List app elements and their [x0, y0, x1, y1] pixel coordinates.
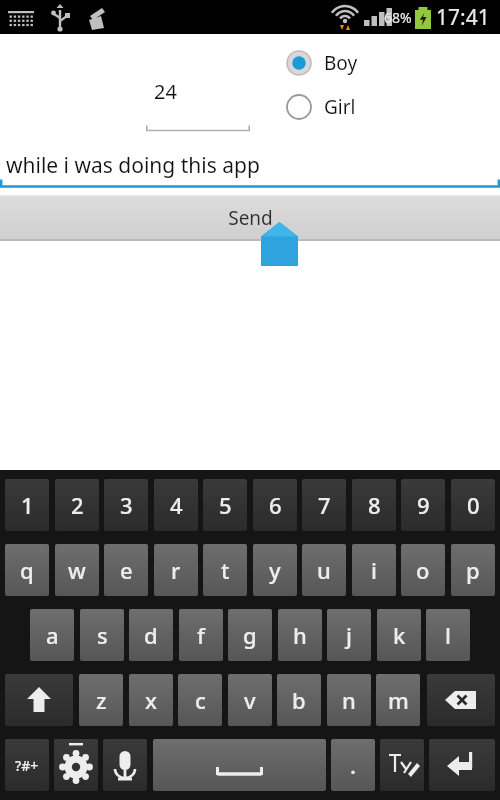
button[interactable]: 7: [302, 479, 346, 531]
button[interactable]: b: [277, 674, 321, 726]
staticText: y: [269, 555, 281, 585]
staticText: p: [466, 555, 480, 585]
button[interactable]: v: [228, 674, 272, 726]
button[interactable]: q: [5, 544, 49, 596]
staticText: g: [243, 620, 257, 650]
button[interactable]: n: [327, 674, 371, 726]
staticText: k: [393, 620, 406, 650]
button[interactable]: 6: [253, 479, 297, 531]
button[interactable]: d: [129, 609, 173, 661]
button[interactable]: l: [426, 609, 470, 661]
staticText: 17:41: [436, 3, 490, 32]
staticText: b: [292, 685, 306, 715]
button[interactable]: j: [327, 609, 371, 661]
staticText: o: [416, 555, 430, 585]
staticText: Send: [228, 205, 273, 231]
button[interactable]: k: [377, 609, 421, 661]
staticText: v: [244, 685, 256, 715]
staticText: s: [97, 620, 108, 650]
button[interactable]: Voice input: [103, 739, 147, 791]
staticText: j: [346, 620, 352, 650]
button[interactable]: o: [401, 544, 445, 596]
button[interactable]: y: [253, 544, 297, 596]
staticText: 5: [219, 490, 232, 520]
staticText: 8: [368, 490, 381, 520]
button[interactable]: 2: [55, 479, 99, 531]
button[interactable]: Girl: [286, 90, 396, 124]
button[interactable]: 1: [5, 479, 49, 531]
button[interactable]: 8: [352, 479, 396, 531]
button[interactable]: Boy: [286, 46, 396, 80]
staticText: l: [445, 620, 451, 650]
staticText: Boy: [324, 50, 358, 76]
button[interactable]: c: [178, 674, 222, 726]
staticText: Girl: [324, 94, 356, 120]
staticText: 1: [21, 490, 34, 520]
button[interactable]: Send: [0, 195, 500, 241]
staticText: w: [68, 555, 86, 585]
button[interactable]: w: [55, 544, 99, 596]
button[interactable]: i: [352, 544, 396, 596]
staticText: while i was doing this app: [6, 151, 260, 180]
button[interactable]: 4: [154, 479, 198, 531]
button[interactable]: while i was doing this app: [0, 149, 500, 188]
staticText: 7: [318, 490, 331, 520]
button[interactable]: Shift: [5, 674, 73, 726]
staticText: f: [197, 620, 205, 650]
button[interactable]: h: [278, 609, 322, 661]
button[interactable]: Enter: [429, 739, 495, 791]
button[interactable]: s: [80, 609, 124, 661]
button[interactable]: p: [451, 544, 495, 596]
button[interactable]: e: [104, 544, 148, 596]
staticText: t: [221, 555, 230, 585]
button[interactable]: g: [228, 609, 272, 661]
staticText: a: [46, 620, 59, 650]
staticText: n: [342, 685, 356, 715]
staticText: 0: [467, 490, 480, 520]
staticText: d: [144, 620, 158, 650]
staticText: u: [317, 555, 331, 585]
staticText: z: [96, 685, 107, 715]
button[interactable]: 0: [451, 479, 495, 531]
button[interactable]: a: [30, 609, 74, 661]
staticText: i: [371, 555, 377, 585]
staticText: ?#+: [15, 756, 39, 775]
button[interactable]: 9: [401, 479, 445, 531]
staticText: 2: [71, 490, 84, 520]
button[interactable]: Space: [153, 739, 326, 791]
button[interactable]: 24: [146, 74, 250, 132]
staticText: 24: [154, 78, 177, 105]
button[interactable]: Settings: [54, 739, 98, 791]
staticText: 9: [417, 490, 430, 520]
button[interactable]: m: [376, 674, 420, 726]
staticText: h: [293, 620, 307, 650]
button[interactable]: 5: [203, 479, 247, 531]
button[interactable]: .: [331, 739, 375, 791]
staticText: .: [350, 750, 356, 780]
button[interactable]: r: [154, 544, 198, 596]
button[interactable]: Handwriting: [380, 739, 424, 791]
staticText: x: [145, 685, 157, 715]
button[interactable]: Delete: [427, 674, 495, 726]
staticText: m: [388, 685, 409, 715]
staticText: 68%: [384, 8, 412, 27]
staticText: 4: [170, 490, 183, 520]
staticText: q: [20, 555, 34, 585]
button[interactable]: u: [302, 544, 346, 596]
button[interactable]: f: [179, 609, 223, 661]
staticText: c: [195, 685, 206, 715]
button[interactable]: x: [129, 674, 173, 726]
button[interactable]: t: [203, 544, 247, 596]
button[interactable]: 3: [104, 479, 148, 531]
staticText: r: [171, 555, 181, 585]
button[interactable]: ?#+: [5, 739, 49, 791]
staticText: 6: [269, 490, 282, 520]
staticText: 3: [120, 490, 133, 520]
staticText: e: [120, 555, 133, 585]
button[interactable]: z: [79, 674, 123, 726]
